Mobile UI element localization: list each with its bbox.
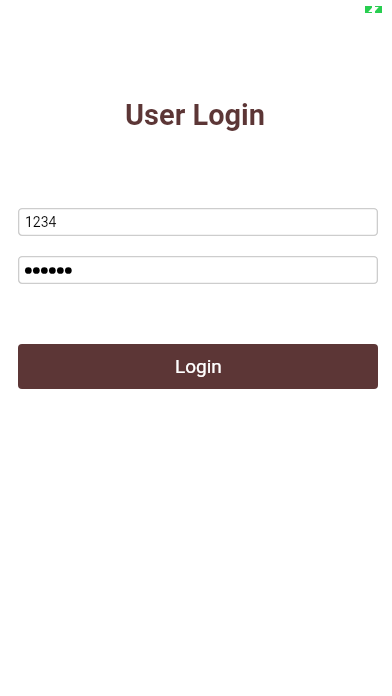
button[interactable]: Toggle fullscreen bbox=[365, 6, 382, 13]
staticText: User Login bbox=[0, 98, 391, 132]
staticText: Login bbox=[175, 355, 222, 377]
button[interactable]: Password bbox=[18, 256, 378, 284]
button[interactable]: Login bbox=[18, 344, 378, 389]
button[interactable]: 1234 bbox=[18, 208, 378, 236]
other: Password bbox=[25, 266, 72, 274]
staticText: 1234 bbox=[25, 214, 57, 230]
